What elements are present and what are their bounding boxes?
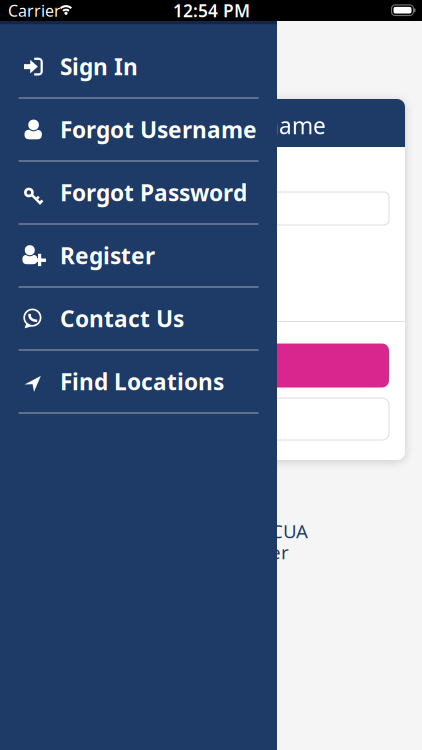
staticText: 12:54 PM xyxy=(173,0,250,22)
button[interactable]: Forgot Username xyxy=(0,98,277,160)
staticText: Sign In xyxy=(60,51,138,81)
button[interactable]: Contact Us xyxy=(0,287,277,349)
button[interactable]: Username xyxy=(34,192,389,225)
button[interactable]: Find Locations xyxy=(0,350,277,412)
staticText: Forgot Password xyxy=(60,177,247,207)
button[interactable]: Register xyxy=(0,224,277,286)
staticText: Register xyxy=(60,240,155,270)
button[interactable]: Submit xyxy=(34,343,389,387)
button[interactable]: Sign In xyxy=(0,35,277,97)
staticText: Federally Insured by NCUA xyxy=(73,519,308,543)
button[interactable]: Cancel xyxy=(34,398,389,440)
staticText: Carrier xyxy=(8,0,61,21)
staticText: Equal Housing Lender xyxy=(94,540,289,564)
staticText: Contact Us xyxy=(60,303,184,333)
button[interactable]: Forgot Password xyxy=(0,161,277,223)
staticText: Forgot Username xyxy=(60,114,257,144)
staticText: Find Locations xyxy=(60,366,224,396)
staticText: Forgot Username xyxy=(138,110,326,140)
